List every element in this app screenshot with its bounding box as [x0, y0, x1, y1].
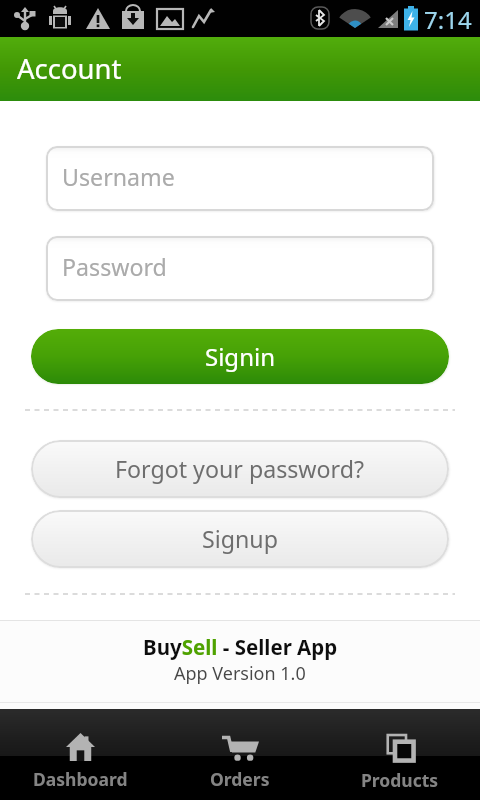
staticText: 7:14	[424, 3, 472, 36]
staticText: Signup	[202, 523, 278, 555]
button[interactable]: Orders	[160, 709, 320, 800]
staticText: App Version 1.0	[174, 661, 306, 686]
button[interactable]: Dashboard	[0, 709, 160, 800]
button[interactable]: Forgot your password?	[31, 440, 449, 498]
staticText: Dashboard	[33, 767, 128, 791]
staticText: Username	[62, 161, 175, 193]
staticText: Account	[17, 50, 122, 87]
staticText: Signin	[205, 340, 275, 373]
staticText: Products	[361, 768, 439, 792]
button[interactable]: Signup	[31, 510, 449, 568]
button[interactable]: Signin	[31, 329, 449, 384]
staticText: Forgot your password?	[115, 453, 365, 485]
staticText: Orders	[210, 767, 270, 791]
button[interactable]: Products	[320, 709, 480, 800]
button[interactable]: Password	[46, 236, 434, 301]
staticText: Password	[62, 251, 167, 283]
staticText: BuySell - Seller App	[143, 633, 338, 661]
button[interactable]: Username	[46, 146, 434, 211]
